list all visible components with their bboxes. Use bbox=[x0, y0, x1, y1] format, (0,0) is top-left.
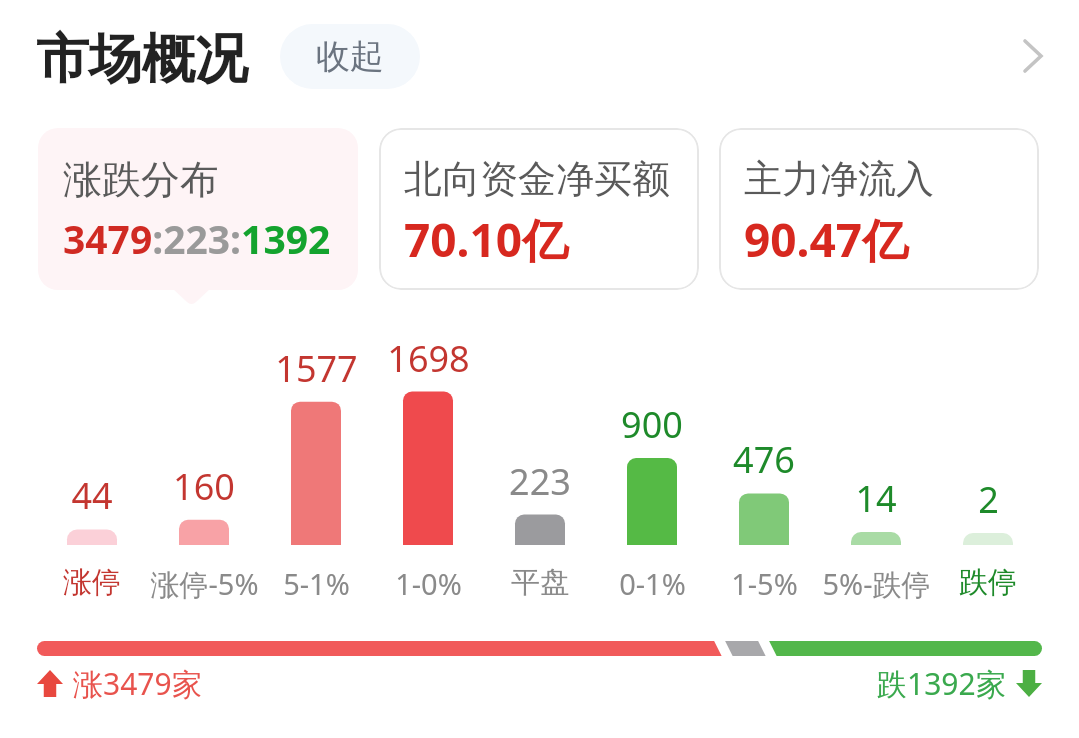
button[interactable]: 主力净流入 bbox=[719, 128, 1039, 290]
staticText: 3479:223:1392 bbox=[63, 212, 331, 265]
staticText: 涨停-5% bbox=[150, 564, 259, 604]
button[interactable]: 跌1392家 bbox=[877, 663, 1042, 704]
staticText: 900 bbox=[621, 400, 683, 449]
staticText: 5-1% bbox=[283, 564, 350, 603]
button[interactable]: 5-1% bbox=[260, 564, 372, 603]
staticText: 主力净流入 bbox=[744, 155, 934, 203]
staticText: 90.47亿 bbox=[744, 208, 909, 271]
staticText: 1698 bbox=[387, 334, 470, 383]
staticText: 市场概况 bbox=[36, 26, 248, 93]
button[interactable]: 涨停 bbox=[36, 564, 148, 601]
staticText: 5%-跌停 bbox=[822, 564, 931, 604]
button[interactable]: 0-1% bbox=[596, 564, 708, 603]
staticText: 1577 bbox=[275, 344, 358, 393]
button[interactable]: 5%-跌停 bbox=[820, 564, 932, 604]
staticText: 70.10亿 bbox=[404, 208, 569, 271]
button[interactable]: 涨跌分布 bbox=[38, 128, 358, 290]
button[interactable]: Expand market overview bbox=[996, 19, 1070, 93]
staticText: 160 bbox=[173, 462, 235, 511]
staticText: 223 bbox=[509, 457, 571, 506]
button[interactable]: 1-5% bbox=[708, 564, 820, 603]
staticText: 涨3479家 bbox=[73, 663, 202, 704]
staticText: 北向资金净买额 bbox=[404, 155, 670, 203]
staticText: 平盘 bbox=[511, 564, 569, 601]
staticText: 涨停 bbox=[63, 564, 121, 601]
staticText: 0-1% bbox=[619, 564, 686, 603]
staticText: 1-5% bbox=[731, 564, 798, 603]
staticText: 1-0% bbox=[395, 564, 462, 603]
staticText: 收起 bbox=[316, 35, 384, 78]
button[interactable]: 1-0% bbox=[372, 564, 484, 603]
staticText: 476 bbox=[733, 435, 795, 484]
button[interactable]: 北向资金净买额 bbox=[379, 128, 699, 290]
staticText: 涨跌分布 bbox=[63, 155, 219, 204]
button[interactable]: 涨3479家 bbox=[37, 663, 202, 704]
staticText: 跌1392家 bbox=[877, 663, 1006, 704]
staticText: 2 bbox=[978, 475, 999, 524]
button[interactable]: 涨停-5% bbox=[148, 564, 260, 604]
button[interactable]: 收起 bbox=[280, 24, 420, 89]
staticText: 44 bbox=[71, 471, 113, 520]
staticText: 跌停 bbox=[959, 564, 1017, 601]
button[interactable]: 跌停 bbox=[932, 564, 1044, 601]
staticText: 14 bbox=[855, 474, 897, 523]
button[interactable]: 平盘 bbox=[484, 564, 596, 601]
